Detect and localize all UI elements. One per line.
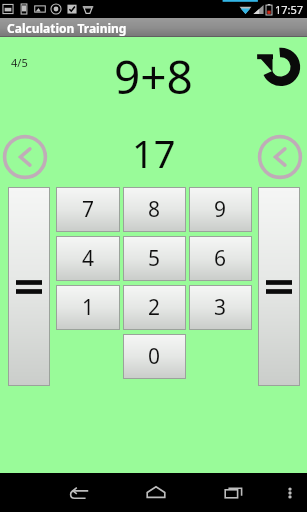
button[interactable]: Back [40,473,117,512]
staticText: 4/5 [11,55,28,70]
staticText: 17 [132,127,176,179]
button[interactable]: 8 [124,188,185,231]
button[interactable]: Home [117,473,195,512]
staticText: 5 [148,244,161,273]
staticText: 6 [214,244,227,273]
staticText: 1 [82,293,95,322]
staticText: 7 [82,195,95,224]
button[interactable]: Equals [259,188,299,385]
staticText: Calculation Training [7,20,127,36]
button[interactable]: 4 [57,237,119,280]
button[interactable]: Back [256,133,304,181]
button[interactable]: Undo [256,39,304,87]
staticText: 9 [214,195,227,224]
staticText: 3 [214,293,227,322]
button[interactable]: 3 [190,286,251,329]
button[interactable]: 7 [57,188,119,231]
staticText: 0 [148,342,161,371]
button[interactable]: 6 [190,237,251,280]
staticText: 2 [148,293,161,322]
button[interactable]: 2 [124,286,185,329]
button[interactable]: Equals [9,188,49,385]
button[interactable]: 1 [57,286,119,329]
button[interactable]: Previous question [1,133,49,181]
button[interactable]: 5 [124,237,185,280]
button[interactable]: 0 [124,335,185,378]
staticText: 4 [82,244,95,273]
staticText: 17:57 [275,2,304,17]
staticText: 9+8 [114,45,193,108]
button[interactable]: 9 [190,188,251,231]
staticText: 8 [148,195,161,224]
button[interactable]: Menu [273,473,307,512]
button[interactable]: Recents [195,473,273,512]
